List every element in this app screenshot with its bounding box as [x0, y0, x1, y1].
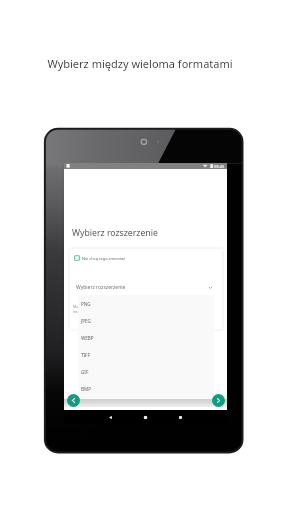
- staticText: WEBP: [81, 335, 94, 341]
- button[interactable]: Next: [212, 394, 225, 407]
- staticText: Mo ins: [73, 304, 79, 314]
- button[interactable]: Recents: [173, 410, 187, 424]
- staticText: JPEG: [81, 318, 91, 324]
- staticText: Nie chcę tego zmieniać: [82, 256, 126, 261]
- staticText: Wybierz rozszerzenie: [76, 284, 126, 291]
- button[interactable]: Nie chcę tego zmieniać: [74, 253, 164, 263]
- staticText: Wybierz między wieloma formatami: [0, 56, 284, 71]
- staticText: Wybierz rozszerzenie: [72, 227, 158, 239]
- button[interactable]: WEBP: [78, 329, 214, 346]
- staticText: 09:45: [214, 164, 225, 169]
- button[interactable]: GIF: [78, 363, 214, 380]
- staticText: TIFF: [81, 352, 90, 358]
- button[interactable]: BMP: [78, 380, 214, 397]
- button[interactable]: Home: [138, 410, 152, 424]
- staticText: PNG: [81, 301, 91, 307]
- button[interactable]: Wybierz rozszerzenie: [76, 282, 213, 293]
- button[interactable]: PNG: [78, 295, 214, 312]
- staticText: GIF: [81, 369, 89, 375]
- staticText: BMP: [81, 386, 91, 392]
- button[interactable]: TIFF: [78, 346, 214, 363]
- button[interactable]: Back: [103, 410, 117, 424]
- button[interactable]: JPEG: [78, 312, 214, 329]
- button[interactable]: Previous: [67, 394, 80, 407]
